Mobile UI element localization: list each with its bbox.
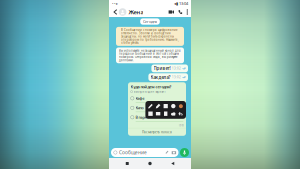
staticText: Жена	[128, 8, 143, 16]
staticText: 13:02	[172, 66, 181, 70]
button[interactable]: Home	[145, 159, 154, 168]
staticText: В парк	[136, 115, 147, 120]
button[interactable]: Tool 5	[178, 103, 184, 109]
staticText: Вы используете незащищённый канал для пе…	[119, 49, 181, 62]
button[interactable]: Voice call	[174, 10, 183, 14]
button[interactable]: Tool 4	[170, 103, 176, 109]
staticText: Выберите один вариант	[134, 90, 166, 93]
button[interactable]: Сообщение	[111, 148, 178, 157]
staticText: Куда пойдем сегодня?	[131, 84, 172, 89]
button[interactable]: Tool 9	[170, 111, 176, 117]
staticText: Сегодня	[143, 19, 157, 24]
button[interactable]: More options	[183, 9, 189, 15]
staticText: Сообщение	[119, 149, 147, 156]
staticText: ••▸	[112, 1, 118, 6]
button[interactable]: Video call	[169, 10, 174, 14]
button[interactable]: Tool 6	[147, 111, 154, 117]
staticText: Кафе	[136, 96, 145, 101]
staticText: Посмотреть голоса	[142, 130, 172, 134]
button[interactable]: Посмотреть голоса	[128, 128, 186, 136]
staticText: В Сообщении с номера шифрование отключен…	[121, 28, 179, 44]
staticText: 13:05	[178, 123, 183, 127]
button[interactable]: Record voice message	[180, 148, 189, 157]
button[interactable]: Tool 7	[155, 111, 161, 117]
button[interactable]: Tool 1	[147, 103, 154, 109]
button[interactable]: Recent apps	[123, 159, 132, 168]
button[interactable]: Tool 3	[163, 103, 169, 109]
staticText: ◂▮ 13:04	[174, 1, 188, 6]
button[interactable]: Tool 2	[155, 103, 161, 109]
button[interactable]: Tool 10	[178, 111, 184, 117]
staticText: Привет!	[154, 65, 171, 71]
button[interactable]: Back	[111, 9, 119, 15]
staticText: 13:02	[172, 75, 181, 79]
staticText: Кино	[136, 105, 144, 110]
staticText: Как дела?	[151, 74, 171, 80]
button[interactable]: Tool 8	[163, 111, 169, 117]
button[interactable]: Back	[168, 159, 177, 168]
